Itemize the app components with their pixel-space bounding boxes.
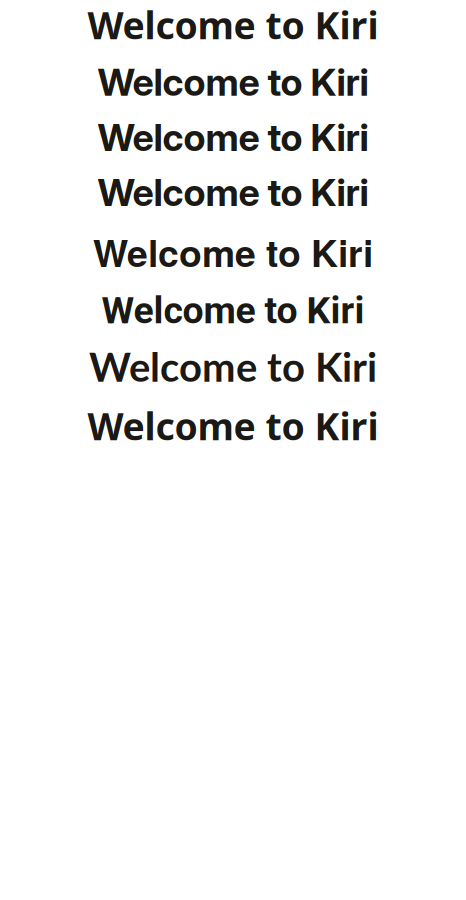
staticText: Welcome to Kiri [87,400,378,451]
staticText: Welcome to Kiri [93,225,373,279]
staticText: Welcome to Kiri [97,60,368,105]
staticText: Welcome to Kiri [89,342,377,390]
staticText: Welcome to Kiri [97,170,368,215]
staticText: Welcome to Kiri [97,115,368,160]
staticText: Welcome to Kiri [101,289,364,332]
staticText: Welcome to Kiri [87,0,378,50]
